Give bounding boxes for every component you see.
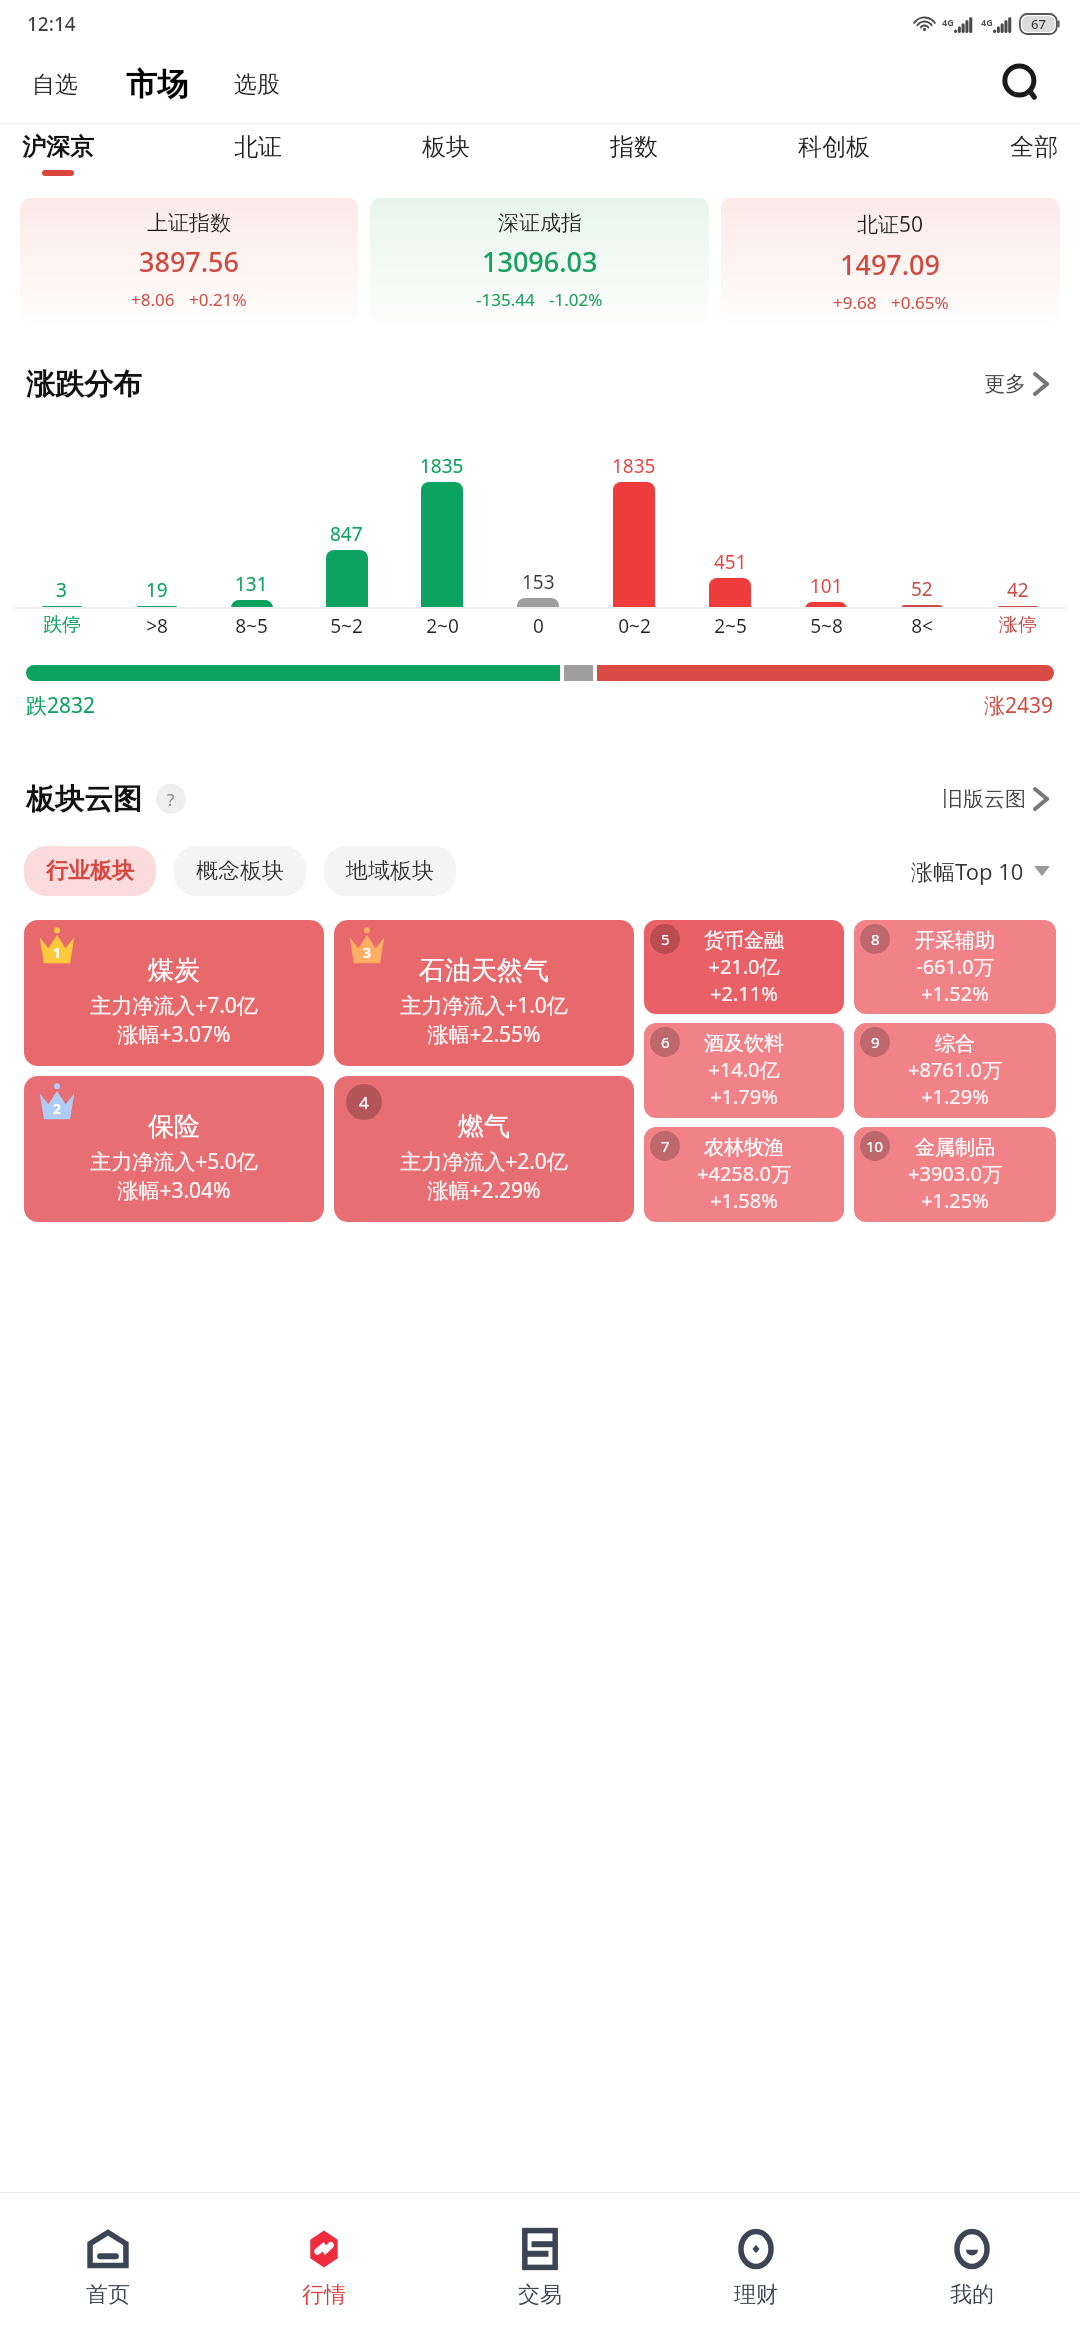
staticText: 跌2832 <box>26 691 96 720</box>
staticText: 13096.03 <box>482 243 598 280</box>
staticText: 科创板 <box>798 132 870 162</box>
staticText: 5~2 <box>330 613 363 639</box>
staticText: 4 <box>359 1091 369 1114</box>
button[interactable]: 选股 <box>228 64 286 105</box>
staticText: 4G <box>981 16 993 28</box>
staticText: 上证指数 <box>147 210 231 236</box>
staticText: 131 <box>235 571 268 597</box>
staticText: 交易 <box>518 2281 562 2309</box>
staticText: 市场 <box>126 65 188 104</box>
button[interactable]: Help <box>156 784 186 814</box>
button[interactable]: 指数 <box>602 124 666 170</box>
button[interactable]: 酒及饮料 <box>644 1023 844 1118</box>
button[interactable]: 理财 <box>648 2193 864 2340</box>
staticText: 5~8 <box>810 613 843 639</box>
button[interactable]: 综合 <box>854 1023 1056 1118</box>
staticText: 深证成指 <box>498 210 582 236</box>
button[interactable]: 2 <box>24 1076 324 1222</box>
staticText: 涨停 <box>999 613 1037 637</box>
staticText: 6 <box>661 1032 670 1052</box>
staticText: 石油天然气 <box>419 954 549 987</box>
staticText: 更多 <box>984 371 1026 397</box>
button[interactable]: 深证成指 <box>370 198 709 323</box>
staticText: 2~5 <box>714 613 747 639</box>
staticText: -661.0万 <box>916 953 994 980</box>
button[interactable]: 自选 <box>26 64 84 105</box>
button[interactable]: 板块 <box>414 124 478 170</box>
staticText: 跌停 <box>43 613 81 637</box>
staticText: 旧版云图 <box>942 786 1026 812</box>
staticText: 涨幅+3.07% <box>117 1020 231 1049</box>
staticText: 67 <box>1031 15 1046 33</box>
button[interactable]: 市场 <box>120 63 194 106</box>
staticText: 货币金融 <box>704 928 784 953</box>
button[interactable]: 地域板块 <box>324 846 456 896</box>
button[interactable]: 货币金融 <box>644 920 844 1014</box>
button[interactable]: Search <box>994 56 1050 112</box>
button[interactable]: 4 <box>334 1076 634 1222</box>
staticText: 0~2 <box>618 613 651 639</box>
staticText: 8~5 <box>235 613 268 639</box>
button[interactable]: 1 <box>24 920 324 1066</box>
button[interactable]: 北证 <box>226 124 290 170</box>
staticText: +3903.0万 <box>908 1160 1002 1187</box>
staticText: 涨2439 <box>984 691 1054 720</box>
staticText: 金属制品 <box>915 1135 995 1160</box>
button[interactable]: 我的 <box>864 2193 1080 2340</box>
staticText: 8< <box>911 613 933 639</box>
staticText: 煤炭 <box>148 954 200 987</box>
staticText: 3 <box>56 577 67 603</box>
staticText: 52 <box>911 576 933 602</box>
button[interactable]: 上证指数 <box>20 198 358 323</box>
staticText: 行业板块 <box>46 857 134 885</box>
staticText: 理财 <box>734 2281 778 2309</box>
staticText: 综合 <box>935 1031 975 1056</box>
button[interactable]: 交易 <box>432 2193 648 2340</box>
button[interactable]: 旧版云图 <box>936 780 1054 818</box>
button[interactable]: 金属制品 <box>854 1127 1056 1222</box>
staticText: 12:14 <box>27 11 76 37</box>
button[interactable]: 沪深京 <box>14 124 102 176</box>
button[interactable]: 行情 <box>216 2193 432 2340</box>
staticText: 自选 <box>32 70 78 99</box>
staticText: 1835 <box>612 453 656 479</box>
staticText: 153 <box>522 569 555 595</box>
staticText: +1.29% <box>921 1083 989 1110</box>
staticText: 北证 <box>234 132 282 162</box>
staticText: 8 <box>871 929 880 949</box>
button[interactable]: 首页 <box>0 2193 216 2340</box>
staticText: 涨幅Top 10 <box>911 856 1024 886</box>
staticText: 0 <box>533 613 544 639</box>
staticText: -1.02% <box>549 288 603 311</box>
button[interactable]: 3 <box>334 920 634 1066</box>
staticText: 1835 <box>420 453 464 479</box>
staticText: 主力净流入+7.0亿 <box>90 991 258 1020</box>
button[interactable]: 农林牧渔 <box>644 1127 844 1222</box>
staticText: 开采辅助 <box>915 928 995 953</box>
staticText: 涨幅+2.29% <box>427 1176 541 1205</box>
staticText: 行情 <box>302 2281 346 2309</box>
button[interactable]: 概念板块 <box>174 846 306 896</box>
staticText: 42 <box>1007 577 1029 603</box>
staticText: 燃气 <box>458 1110 510 1143</box>
button[interactable]: 行业板块 <box>24 846 156 896</box>
staticText: 涨跌分布 <box>26 366 142 403</box>
staticText: +4258.0万 <box>697 1160 791 1187</box>
button[interactable]: 全部 <box>1002 124 1066 170</box>
staticText: 847 <box>330 521 363 547</box>
button[interactable]: 科创板 <box>790 124 878 170</box>
staticText: 101 <box>810 573 843 599</box>
button[interactable]: 更多 <box>978 365 1054 403</box>
staticText: +1.52% <box>921 980 989 1007</box>
staticText: +1.25% <box>921 1187 989 1214</box>
staticText: 指数 <box>610 132 658 162</box>
button[interactable]: 涨幅Top 10 <box>905 850 1056 892</box>
staticText: 2~0 <box>426 613 459 639</box>
staticText: 酒及饮料 <box>704 1031 784 1056</box>
staticText: 农林牧渔 <box>704 1135 784 1160</box>
button[interactable]: 北证50 <box>721 198 1060 323</box>
staticText: 概念板块 <box>196 857 284 885</box>
button[interactable]: 开采辅助 <box>854 920 1056 1014</box>
staticText: 我的 <box>950 2281 994 2309</box>
staticText: 1 <box>53 943 62 962</box>
